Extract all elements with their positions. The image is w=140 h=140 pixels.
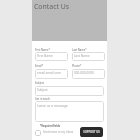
- staticText: Email*: [35, 64, 44, 68]
- staticText: Leave us a message: [37, 103, 68, 107]
- staticText: Get in touch: [35, 97, 51, 101]
- staticText: Contact Us: [34, 2, 70, 11]
- button[interactable]: First Name: [35, 52, 68, 61]
- staticText: SUPPORT US: [83, 130, 100, 134]
- staticText: First Name*: [35, 48, 50, 52]
- staticText: email.email.com: [37, 71, 61, 75]
- button[interactable]: Send news to my inbox checkbox: [35, 130, 41, 136]
- staticText: Subject: [37, 88, 48, 92]
- staticText: Last Name*: [72, 48, 87, 52]
- button[interactable]: email.email.com: [35, 69, 68, 79]
- staticText: 000-000-0000: [74, 71, 94, 75]
- staticText: *Required fields: [40, 124, 61, 127]
- button[interactable]: Last Name: [72, 52, 105, 61]
- staticText: Phone*: [72, 64, 82, 68]
- staticText: Last Name: [74, 54, 90, 58]
- staticText: Subject: [35, 81, 45, 85]
- staticText: Send news to my inbox: [43, 130, 74, 134]
- button[interactable]: SUPPORT US: [80, 127, 103, 137]
- staticText: First Name: [37, 54, 53, 58]
- button[interactable]: Subject: [35, 86, 104, 96]
- button[interactable]: 000-000-0000: [72, 69, 105, 79]
- button[interactable]: Leave us a message: [35, 101, 104, 122]
